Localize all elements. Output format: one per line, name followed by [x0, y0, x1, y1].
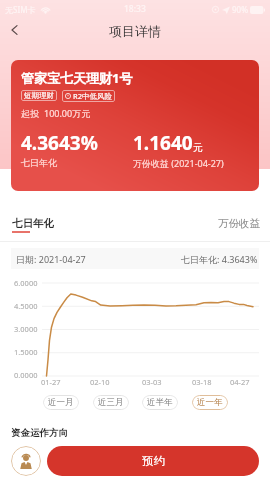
staticText: 七日年化: [21, 157, 57, 168]
staticText: 无SIM卡: [5, 4, 36, 15]
staticText: 1.5000: [14, 347, 38, 357]
staticText: R2中低风险: [73, 91, 112, 101]
staticText: 万份收益 (2021-04-27): [133, 157, 224, 169]
staticText: 0.0000: [14, 370, 38, 380]
staticText: 4.3643%: [21, 130, 98, 156]
staticText: 90%: [232, 4, 248, 15]
staticText: 6.0000: [14, 278, 38, 288]
button[interactable]: 近一月: [43, 395, 79, 410]
staticText: 1.1640: [133, 130, 193, 156]
staticText: 01-27: [41, 377, 61, 387]
staticText: 项目详情: [109, 23, 161, 39]
button[interactable]: 客服: [11, 446, 41, 476]
button[interactable]: Back: [0, 16, 28, 44]
staticText: 元: [193, 141, 203, 154]
staticText: 04-27: [230, 377, 250, 387]
staticText: 02-10: [90, 377, 110, 387]
staticText: 03-03: [142, 377, 162, 387]
staticText: 4.5000: [14, 301, 38, 311]
staticText: 七日年化: [12, 217, 54, 230]
button[interactable]: 管家宝七天理财1号: [11, 60, 259, 191]
staticText: 18:33: [124, 3, 146, 15]
staticText: 七日年化: 4.3643%: [181, 253, 258, 265]
staticText: 3.0000: [14, 324, 38, 334]
staticText: 近一月: [48, 397, 74, 408]
staticText: 预约: [142, 454, 165, 468]
staticText: 管家宝七天理财1号: [21, 69, 133, 87]
staticText: 03-18: [192, 377, 212, 387]
staticText: 近半年: [147, 397, 173, 408]
button[interactable]: 近半年: [142, 395, 178, 410]
button[interactable]: 近三月: [93, 395, 129, 410]
button[interactable]: 近一年: [192, 395, 228, 410]
button[interactable]: 预约: [47, 446, 259, 476]
staticText: 资金运作方向: [11, 427, 68, 439]
staticText: 日期: 2021-04-27: [16, 253, 86, 265]
staticText: 近三月: [98, 397, 124, 408]
staticText: 短期理财: [24, 91, 54, 100]
staticText: 万份收益: [218, 217, 260, 230]
staticText: 100.00万元: [44, 107, 91, 119]
staticText: 近一年: [197, 397, 223, 408]
staticText: 起投: [21, 108, 39, 119]
